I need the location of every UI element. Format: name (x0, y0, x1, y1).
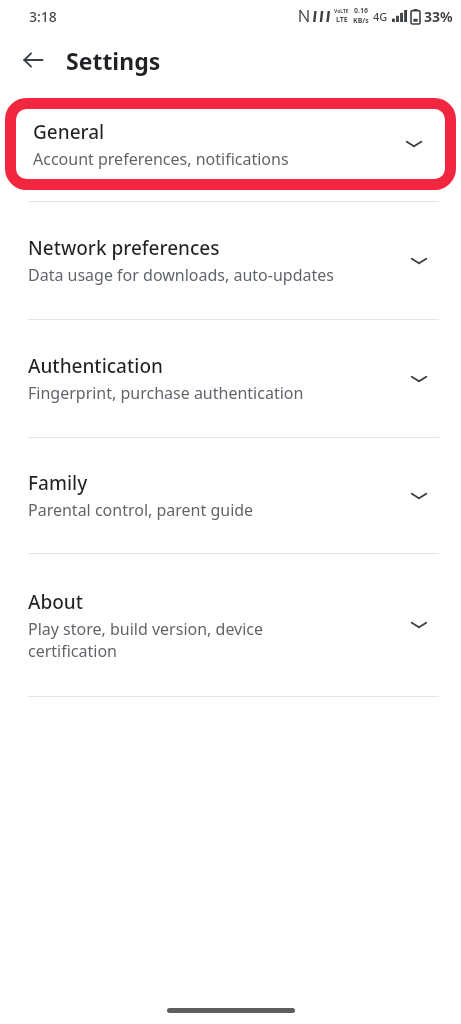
staticText: General (33, 119, 105, 145)
staticText: KB/s (353, 16, 369, 26)
button[interactable]: Network preferences (0, 202, 461, 319)
staticText: Authentication (28, 353, 163, 379)
staticText: Account preferences, notifications (33, 148, 394, 170)
staticText: 33% (424, 7, 453, 26)
button[interactable]: Authentication (0, 320, 461, 437)
staticText: Network preferences (28, 235, 220, 261)
button[interactable]: Expand Authentication (399, 359, 439, 399)
staticText: Family (28, 470, 88, 496)
button[interactable]: About (0, 554, 461, 696)
staticText: 3:18 (29, 7, 57, 26)
staticText: Play store, build version, device certif… (28, 618, 298, 662)
button[interactable]: General (5, 98, 456, 190)
staticText: 0.16 (354, 6, 368, 16)
staticText: Data usage for downloads, auto-updates (28, 264, 399, 286)
button[interactable]: Family (0, 438, 461, 553)
button[interactable]: Expand Network preferences (399, 241, 439, 281)
staticText: Parental control, parent guide (28, 499, 399, 521)
button[interactable]: Expand Family (399, 476, 439, 516)
staticText: Fingerprint, purchase authentication (28, 382, 399, 404)
staticText: LTE (336, 15, 348, 25)
button[interactable]: Expand General (394, 124, 434, 164)
staticText: VoLTE (334, 8, 349, 15)
staticText: About (28, 589, 84, 615)
staticText: 4G (373, 9, 388, 24)
button[interactable]: Back (13, 40, 53, 80)
staticText: Settings (66, 45, 161, 76)
button[interactable]: Expand About (399, 605, 439, 645)
